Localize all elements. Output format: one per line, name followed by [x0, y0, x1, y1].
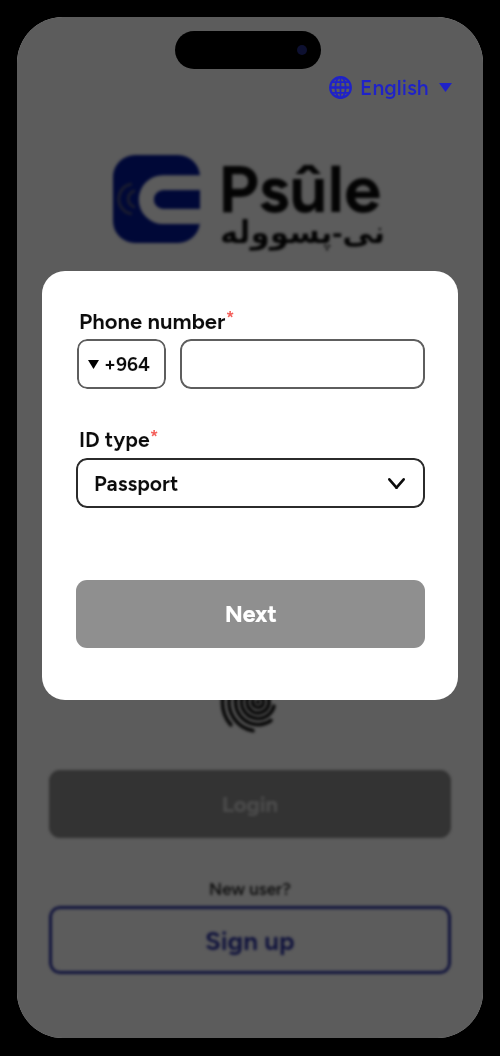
- staticText: Sign up: [205, 925, 295, 956]
- button[interactable]: Login: [49, 770, 451, 838]
- button[interactable]: Language: [323, 68, 458, 107]
- staticText: Phone number: [79, 308, 226, 334]
- button[interactable]: Sign up: [49, 906, 451, 974]
- staticText: Login: [222, 791, 279, 817]
- other: Fingerprint login: [218, 662, 298, 742]
- staticText: Next: [225, 600, 277, 628]
- other: Psule logo: [113, 155, 200, 243]
- button[interactable]: Next: [76, 580, 425, 648]
- staticText: English: [360, 75, 429, 100]
- button[interactable]: Passport: [76, 458, 425, 508]
- staticText: +964: [104, 353, 151, 376]
- staticText: *: [226, 307, 235, 327]
- button[interactable]: +964: [77, 339, 166, 389]
- staticText: *: [150, 426, 159, 446]
- staticText: Psûle: [218, 148, 382, 228]
- other: Language: [329, 76, 352, 99]
- button[interactable]: [180, 339, 425, 389]
- staticText: نی-پسووله: [220, 210, 386, 252]
- staticText: ID type: [79, 427, 150, 452]
- staticText: New user?: [209, 879, 291, 899]
- staticText: Passport: [94, 471, 179, 496]
